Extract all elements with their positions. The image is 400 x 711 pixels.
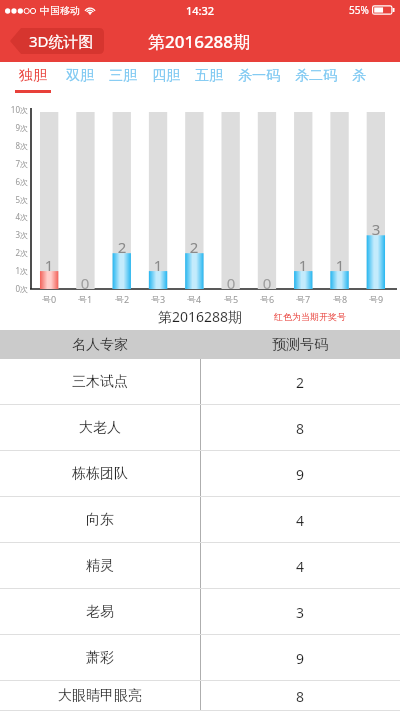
staticText: 3 (200, 603, 400, 622)
staticText: 精灵 (0, 557, 200, 575)
staticText: 红色为当期开奖号 (274, 311, 346, 322)
staticText: 独胆 (19, 67, 47, 85)
button[interactable]: 老易 (0, 589, 400, 635)
staticText: 杀二码 (295, 67, 337, 85)
staticText: 向东 (0, 511, 200, 529)
staticText: 中国移动 (40, 4, 80, 17)
staticText: 三木试点 (0, 373, 200, 391)
staticText: 7次 (0, 158, 28, 169)
staticText: 0 (215, 273, 247, 293)
staticText: 1次 (0, 265, 28, 276)
staticText: 名人专家 (0, 336, 200, 354)
staticText: 2次 (0, 247, 28, 258)
staticText: 萧彩 (0, 649, 200, 667)
staticText: 8 (200, 687, 400, 706)
staticText: 三胆 (109, 67, 137, 85)
staticText: 老易 (0, 603, 200, 621)
staticText: 5次 (0, 194, 28, 205)
button[interactable]: 双胆 (66, 67, 109, 93)
staticText: 3次 (0, 229, 28, 240)
staticText: 0 (251, 273, 283, 293)
staticText: 号3 (142, 293, 174, 305)
staticText: 2 (200, 373, 400, 392)
staticText: 4 (200, 511, 400, 530)
staticText: 第2016288期 (158, 307, 243, 326)
button[interactable]: 返回 3D统计图 (10, 28, 104, 54)
staticText: 四胆 (152, 67, 180, 85)
staticText: 预测号码 (200, 336, 400, 354)
staticText: 0 (69, 273, 101, 293)
staticText: 4 (200, 557, 400, 576)
staticText: 1 (142, 255, 174, 275)
staticText: 双胆 (66, 67, 94, 85)
button[interactable]: 杀一码 (238, 67, 295, 93)
staticText: 14:32 (186, 3, 215, 18)
staticText: 1 (324, 255, 356, 275)
button[interactable]: 向东 (0, 497, 400, 543)
button[interactable]: 四胆 (152, 67, 195, 93)
staticText: 号5 (215, 293, 247, 305)
staticText: 2 (106, 237, 138, 257)
button[interactable]: 三胆 (109, 67, 152, 93)
staticText: 8次 (0, 140, 28, 151)
button[interactable]: 精灵 (0, 543, 400, 589)
button[interactable]: 杀二码 (295, 67, 352, 93)
staticText: 杀 (352, 67, 366, 85)
staticText: 栋栋团队 (0, 465, 200, 483)
staticText: 1 (33, 255, 65, 275)
staticText: 五胆 (195, 67, 223, 85)
button[interactable]: 五胆 (195, 67, 238, 93)
button[interactable]: 栋栋团队 (0, 451, 400, 497)
button[interactable]: 三木试点 (0, 359, 400, 405)
staticText: 1 (287, 255, 319, 275)
staticText: 4次 (0, 211, 28, 222)
staticText: 号6 (251, 293, 283, 305)
staticText: 号4 (178, 293, 210, 305)
staticText: 大老人 (0, 419, 200, 437)
staticText: 第2016288期 (148, 30, 251, 53)
staticText: 55% (349, 3, 369, 17)
button[interactable]: 萧彩 (0, 635, 400, 681)
staticText: 大眼睛甲眼亮 (0, 687, 200, 705)
staticText: 9 (200, 465, 400, 484)
staticText: 号9 (360, 293, 392, 305)
button[interactable]: 大老人 (0, 405, 400, 451)
button[interactable]: 大眼睛甲眼亮 (0, 681, 400, 711)
button[interactable]: 独胆 (15, 67, 66, 93)
staticText: 杀一码 (238, 67, 280, 85)
staticText: 6次 (0, 176, 28, 187)
staticText: 10次 (0, 104, 28, 115)
staticText: 号8 (324, 293, 356, 305)
staticText: 3 (360, 219, 392, 239)
staticText: 3D统计图 (29, 31, 94, 51)
staticText: 2 (178, 237, 210, 257)
staticText: 号7 (287, 293, 319, 305)
staticText: 号0 (33, 293, 65, 305)
staticText: 9次 (0, 122, 28, 133)
staticText: 9 (200, 649, 400, 668)
staticText: 0次 (0, 283, 28, 294)
staticText: 8 (200, 419, 400, 438)
staticText: 号2 (106, 293, 138, 305)
staticText: 号1 (69, 293, 101, 305)
button[interactable]: 杀 (352, 67, 366, 93)
